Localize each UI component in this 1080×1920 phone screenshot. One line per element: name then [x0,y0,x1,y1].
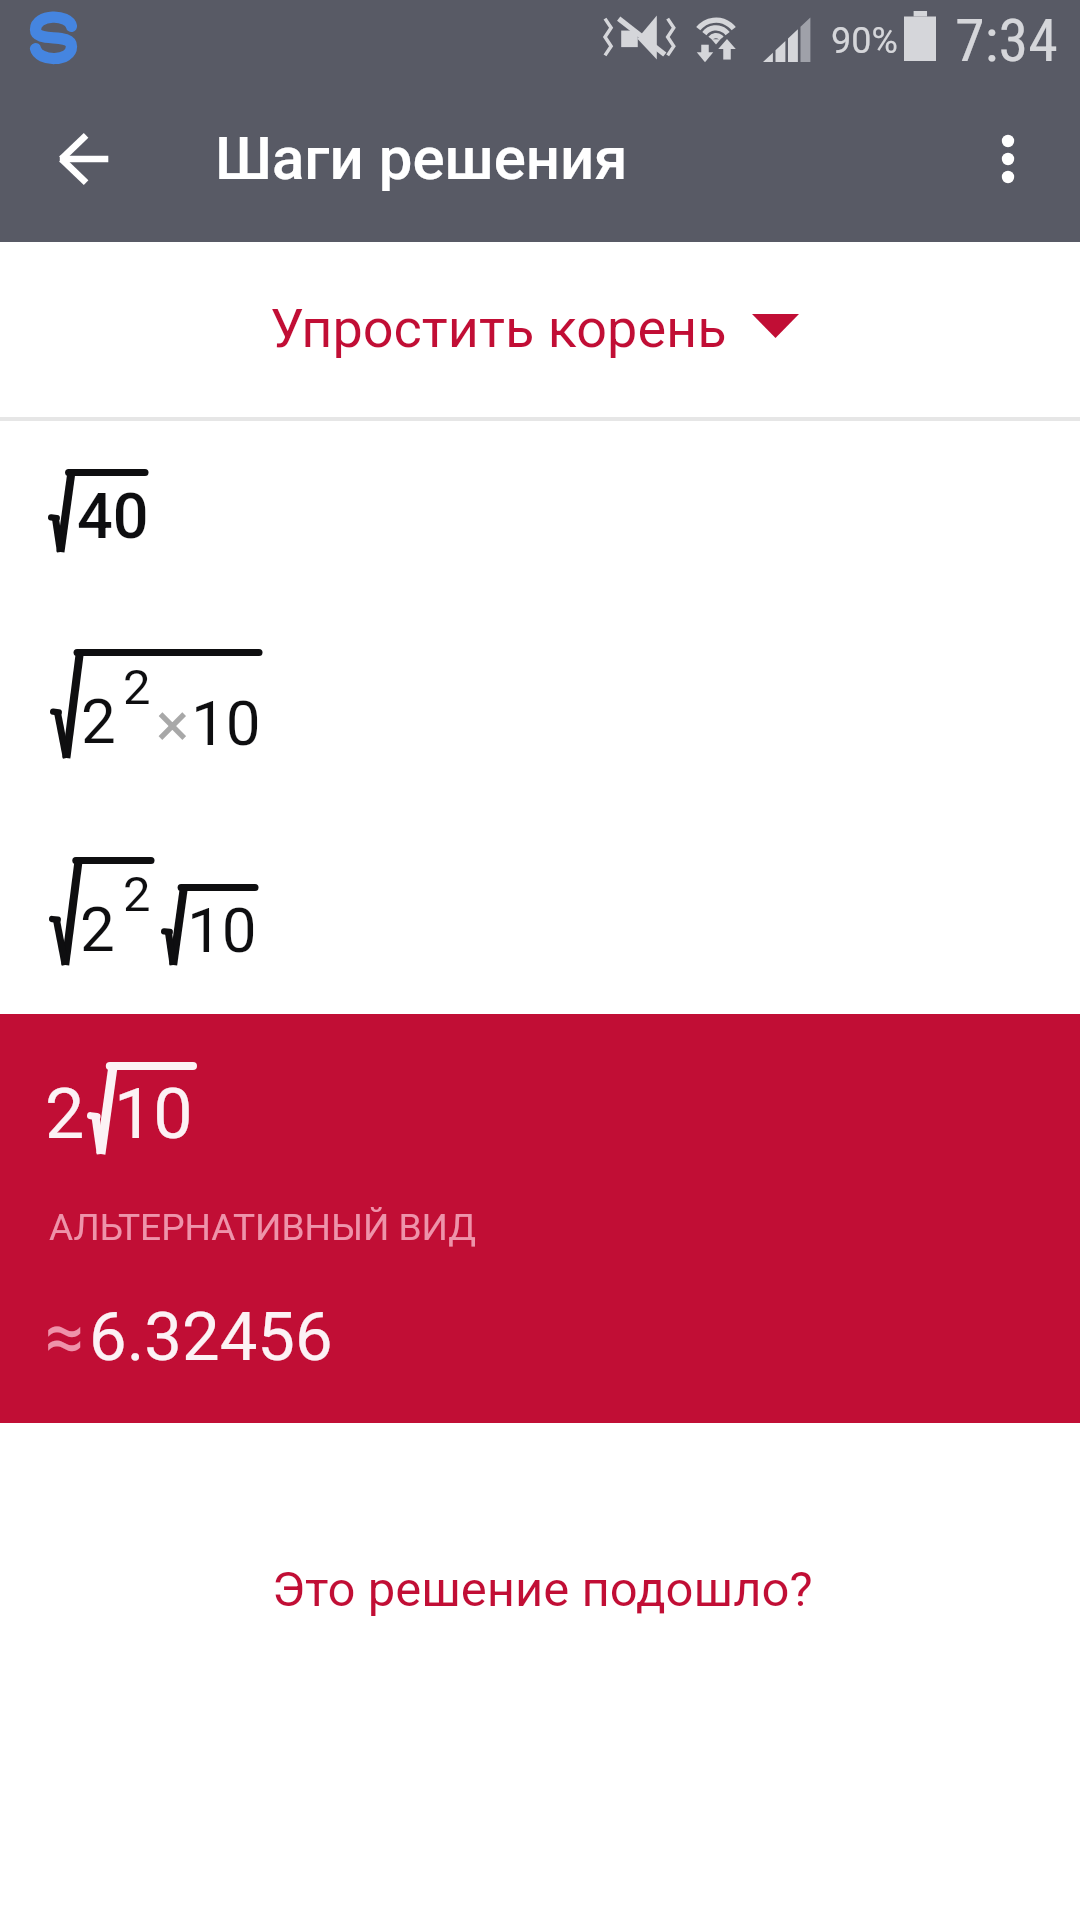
staticText: 2 [45,1073,85,1155]
staticText: Шаги решения [215,123,628,193]
staticText: 7:34 [955,5,1058,75]
staticText: 10 [187,894,257,967]
staticText: 6.32456 [89,1298,333,1377]
staticText: × [156,688,190,761]
staticText: 2 [123,659,151,716]
staticText: 2 [81,685,116,758]
button[interactable]: 2 [0,830,1080,1015]
button[interactable]: Back [18,99,150,231]
staticText: 90% [831,20,898,62]
button[interactable]: 2 [0,620,1080,805]
staticText: АЛЬТЕРНАТИВНЫЙ ВИД [49,1206,477,1249]
button[interactable]: 40 [0,420,1080,600]
staticText: 10 [191,687,261,760]
staticText: ≈ [45,1296,85,1378]
staticText: 10 [114,1073,193,1155]
button[interactable]: 2 [0,1014,1080,1423]
button[interactable]: Упростить корень [0,242,1080,417]
staticText: 2 [123,866,151,923]
button[interactable]: Это решение подошло? [0,1530,1080,1650]
staticText: Упростить корень [270,297,727,360]
button[interactable]: More options [953,104,1063,214]
staticText: 40 [77,480,149,554]
staticText: 2 [80,893,115,966]
staticText: Это решение подошло? [272,1561,813,1618]
